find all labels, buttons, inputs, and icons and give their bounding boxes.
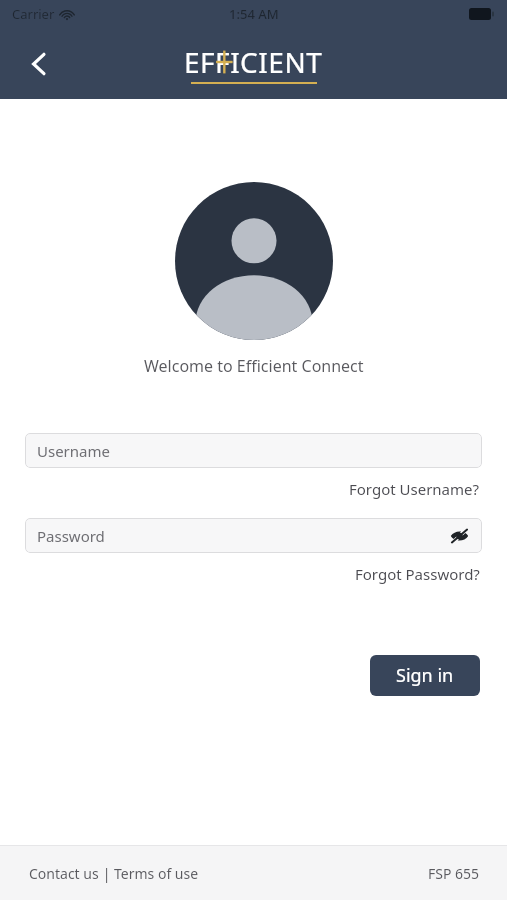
- staticText: Terms of use: [114, 864, 199, 883]
- staticText: Forgot Password?: [355, 564, 480, 584]
- button[interactable]: Contact us: [29, 860, 99, 887]
- staticText: Contact us: [29, 864, 99, 883]
- staticText: Password: [37, 526, 105, 546]
- button[interactable]: Terms of use: [114, 860, 199, 887]
- button[interactable]: Show password: [447, 526, 472, 546]
- staticText: Carrier: [12, 5, 55, 23]
- staticText: |: [99, 864, 114, 883]
- button[interactable]: Forgot Username?: [347, 476, 482, 502]
- staticText: 1:54 AM: [229, 5, 279, 23]
- staticText: Forgot Username?: [349, 479, 480, 499]
- button[interactable]: Back: [22, 43, 55, 85]
- button[interactable]: Password: [25, 518, 482, 553]
- staticText: FSP 655: [428, 864, 480, 883]
- staticText: EFFICIENT: [184, 43, 323, 81]
- staticText: Username: [37, 441, 110, 461]
- staticText: Sign in: [396, 663, 454, 688]
- staticText: Welcome to Efficient Connect: [144, 355, 364, 377]
- button[interactable]: Username: [25, 433, 482, 468]
- button[interactable]: Forgot Password?: [353, 561, 482, 587]
- button[interactable]: Sign in: [370, 655, 480, 696]
